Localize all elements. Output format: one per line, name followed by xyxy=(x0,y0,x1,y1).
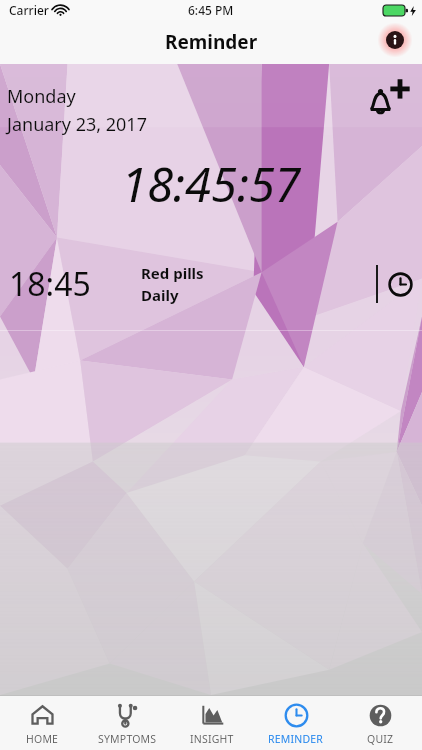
button[interactable]: REMINDER xyxy=(254,696,338,750)
staticText: SYMPTOMS xyxy=(98,732,157,746)
staticText: Daily xyxy=(141,285,179,305)
staticText: Red pills xyxy=(141,263,204,283)
button[interactable]: SYMPTOMS xyxy=(85,696,170,750)
staticText: 18:45 xyxy=(9,262,91,306)
staticText: Reminder xyxy=(165,29,258,55)
button[interactable]: Add reminder xyxy=(364,78,414,120)
staticText: HOME xyxy=(26,732,59,746)
button[interactable]: Information xyxy=(380,25,410,55)
staticText: INSIGHT xyxy=(190,732,234,746)
button[interactable]: INSIGHT xyxy=(170,696,254,750)
button[interactable]: QUIZ xyxy=(338,696,422,750)
staticText: 18:45:57 xyxy=(0,152,422,216)
staticText: 6:45 PM xyxy=(188,2,234,18)
button[interactable]: HOME xyxy=(0,696,85,750)
button[interactable]: 18:45 xyxy=(0,244,422,324)
staticText: January 23, 2017 xyxy=(7,112,147,137)
staticText: QUIZ xyxy=(367,732,394,746)
staticText: Monday xyxy=(7,84,76,109)
staticText: Carrier xyxy=(9,2,49,18)
staticText: REMINDER xyxy=(268,732,324,746)
